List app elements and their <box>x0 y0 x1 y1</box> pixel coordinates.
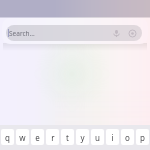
staticText: Search... <box>9 29 35 38</box>
staticText: o <box>125 132 130 143</box>
button[interactable]: Google Lens <box>127 28 138 39</box>
button[interactable]: Voice search <box>111 28 122 39</box>
staticText: p <box>140 132 145 143</box>
staticText: y <box>80 132 85 143</box>
button[interactable]: r <box>46 129 59 145</box>
button[interactable]: o <box>121 129 134 145</box>
button[interactable]: e <box>31 129 44 145</box>
staticText: q <box>5 132 10 143</box>
staticText: t <box>66 132 69 143</box>
button[interactable]: q <box>1 129 14 145</box>
button[interactable]: u <box>91 129 104 145</box>
button[interactable]: y <box>76 129 89 145</box>
staticText: r <box>51 132 55 143</box>
staticText: u <box>95 132 100 143</box>
button[interactable]: w <box>16 129 29 145</box>
button[interactable]: p <box>136 129 149 145</box>
button[interactable]: i <box>106 129 119 145</box>
staticText: e <box>35 132 40 143</box>
staticText: i <box>111 132 114 143</box>
button[interactable]: t <box>61 129 74 145</box>
staticText: w <box>19 132 26 143</box>
button[interactable] <box>6 25 142 41</box>
